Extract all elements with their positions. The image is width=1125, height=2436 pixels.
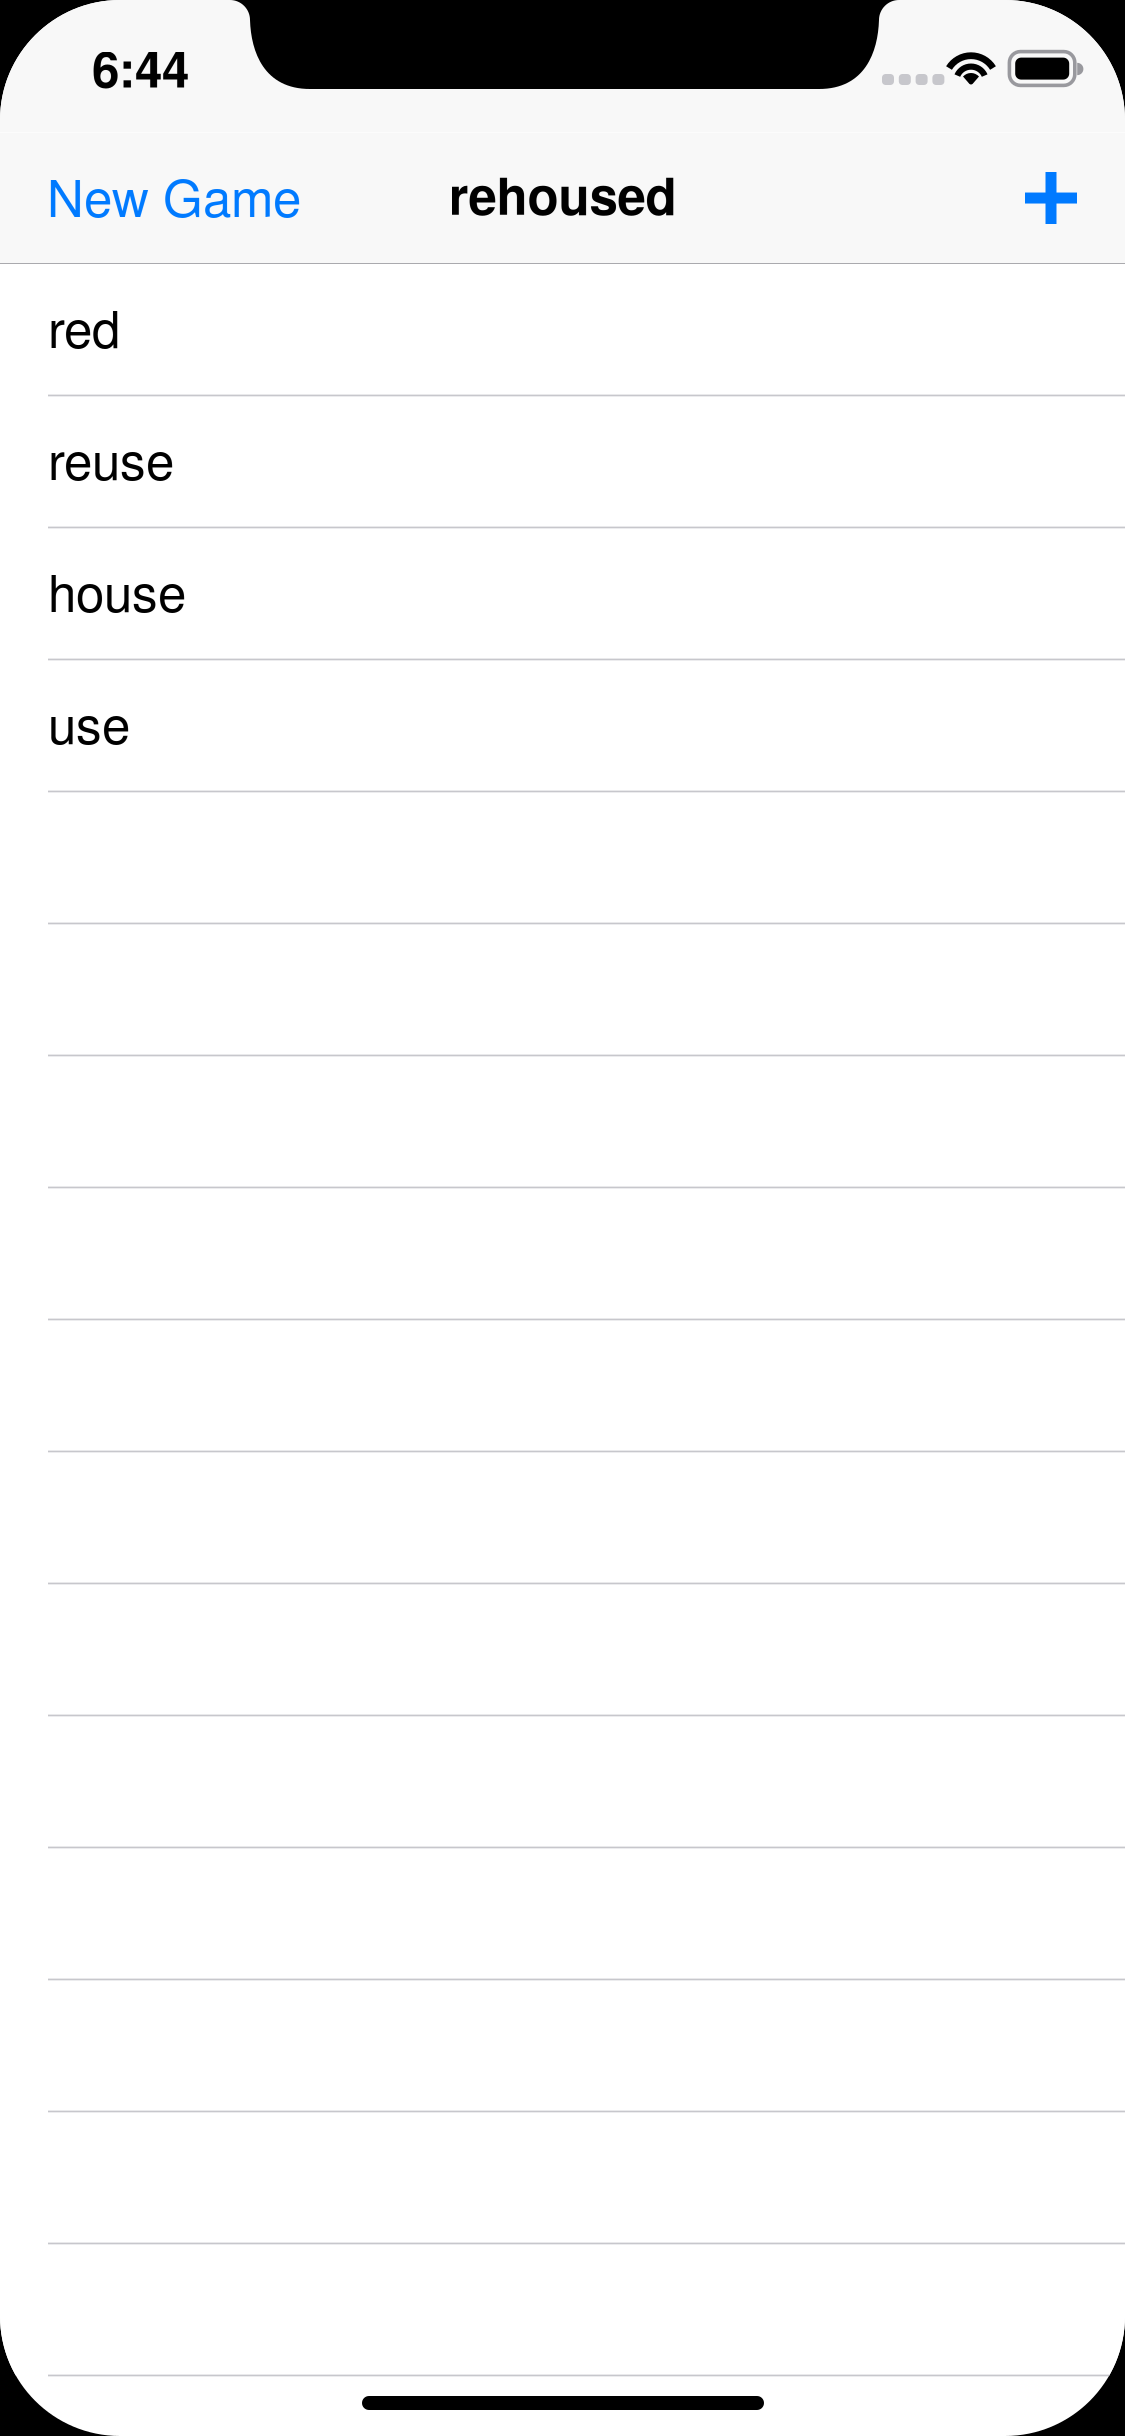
button[interactable]: New Game	[0, 132, 310, 263]
button[interactable]	[0, 1452, 1125, 1584]
button[interactable]	[0, 924, 1125, 1056]
button[interactable]: use	[0, 660, 1125, 792]
button[interactable]	[0, 1056, 1125, 1188]
staticText: red	[48, 289, 120, 362]
button[interactable]	[0, 1584, 1125, 1716]
button[interactable]: Add word	[0, 132, 1125, 263]
button[interactable]: reuse	[0, 396, 1125, 528]
button[interactable]	[0, 1980, 1125, 2112]
staticText: use	[48, 685, 130, 758]
button[interactable]	[0, 1320, 1125, 1452]
button[interactable]	[0, 792, 1125, 924]
button[interactable]: house	[0, 528, 1125, 660]
staticText: 6:44	[92, 32, 189, 103]
button[interactable]	[0, 2244, 1125, 2376]
staticText: reuse	[48, 421, 174, 494]
button[interactable]	[0, 1848, 1125, 1980]
button[interactable]: red	[0, 264, 1125, 396]
button[interactable]	[0, 2112, 1125, 2244]
staticText: house	[48, 553, 186, 626]
button[interactable]	[0, 1716, 1125, 1848]
staticText: New Game	[47, 158, 301, 231]
button[interactable]	[0, 1188, 1125, 1320]
staticText: rehoused	[448, 157, 676, 230]
